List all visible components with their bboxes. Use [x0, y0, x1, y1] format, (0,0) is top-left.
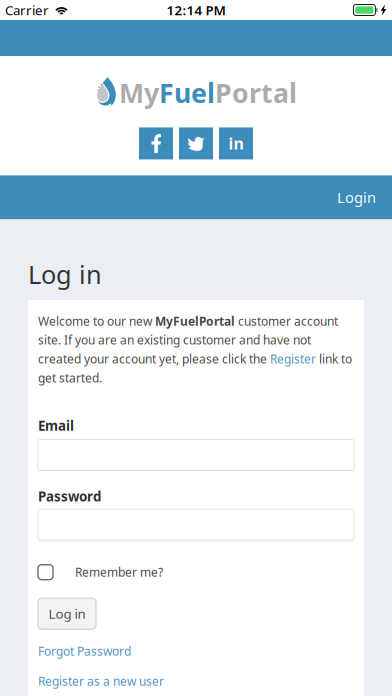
- staticText: in: [228, 133, 243, 154]
- staticText: Welcome to our new MyFuelPortal customer…: [38, 313, 352, 386]
- staticText: Fuel: [159, 75, 215, 110]
- button[interactable]: Forgot Password: [38, 629, 131, 659]
- button[interactable]: Log in: [38, 598, 96, 629]
- staticText: Email: [38, 417, 74, 434]
- staticText: Log in: [28, 257, 102, 291]
- staticText: My: [119, 75, 159, 110]
- button[interactable]: LinkedIn: [219, 127, 253, 159]
- button[interactable]: Twitter: [179, 127, 213, 159]
- button[interactable]: Register as a new user: [38, 659, 164, 689]
- button[interactable]: Login: [321, 175, 392, 219]
- staticText: Portal: [215, 75, 297, 110]
- button[interactable]: Facebook: [139, 127, 173, 159]
- staticText: Register as a new user: [38, 673, 164, 689]
- staticText: Forgot Password: [38, 643, 131, 659]
- staticText: Log in: [48, 605, 85, 622]
- staticText: Password: [38, 487, 101, 505]
- staticText: 12:14 PM: [166, 1, 225, 19]
- staticText: Login: [337, 188, 376, 207]
- button[interactable]: Remember me?: [38, 564, 163, 580]
- staticText: Carrier: [5, 1, 49, 19]
- staticText: Remember me?: [75, 564, 163, 580]
